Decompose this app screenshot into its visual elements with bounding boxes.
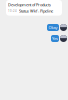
staticText: Yes bbox=[52, 36, 58, 41]
staticText: 10:24 bbox=[8, 9, 17, 13]
staticText: Development of Products bbox=[8, 2, 51, 7]
staticText: Okay bbox=[48, 25, 57, 30]
staticText: Status Wkf - Pipeline bbox=[19, 8, 53, 14]
